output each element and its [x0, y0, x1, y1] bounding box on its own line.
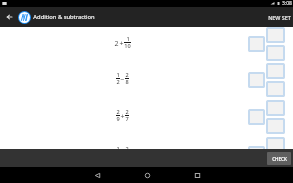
staticText: Addition & subtraction: [33, 13, 95, 21]
button[interactable]: Home: [139, 167, 155, 183]
staticText: CHECK: [272, 156, 287, 162]
staticText: 2: [125, 145, 129, 149]
staticText: 9: [116, 115, 120, 123]
staticText: 8: [125, 78, 129, 86]
staticText: 2: [116, 78, 120, 86]
staticText: 1: [116, 71, 120, 79]
button[interactable]: Back: [55, 167, 139, 183]
staticText: 2: [114, 39, 119, 49]
button[interactable]: Answer field: [266, 27, 285, 43]
button[interactable]: Answer field: [248, 109, 265, 125]
staticText: 2: [125, 108, 129, 116]
staticText: −: [120, 75, 125, 85]
button[interactable]: Answer field: [266, 81, 285, 97]
staticText: 2: [125, 71, 129, 79]
staticText: +: [120, 112, 125, 122]
button[interactable]: Answer field: [248, 72, 265, 88]
button[interactable]: NEW SET: [262, 7, 293, 27]
staticText: +: [119, 39, 124, 49]
staticText: 2: [116, 108, 120, 116]
button[interactable]: CHECK: [267, 152, 291, 165]
button[interactable]: Answer field: [248, 146, 265, 149]
button[interactable]: Back: [0, 7, 18, 27]
staticText: NEW SET: [268, 14, 291, 21]
button[interactable]: Answer field: [248, 36, 265, 52]
button[interactable]: Recents: [155, 167, 239, 183]
button[interactable]: Answer field: [266, 137, 285, 149]
button[interactable]: Answer field: [266, 100, 285, 116]
button[interactable]: Answer field: [266, 118, 285, 134]
staticText: 1: [116, 145, 120, 149]
staticText: 3:08: [282, 0, 292, 7]
staticText: 1: [126, 35, 130, 43]
staticText: 10: [124, 42, 131, 50]
button[interactable]: Answer field: [266, 45, 285, 61]
staticText: 7: [125, 115, 129, 123]
button[interactable]: Answer field: [266, 63, 285, 79]
